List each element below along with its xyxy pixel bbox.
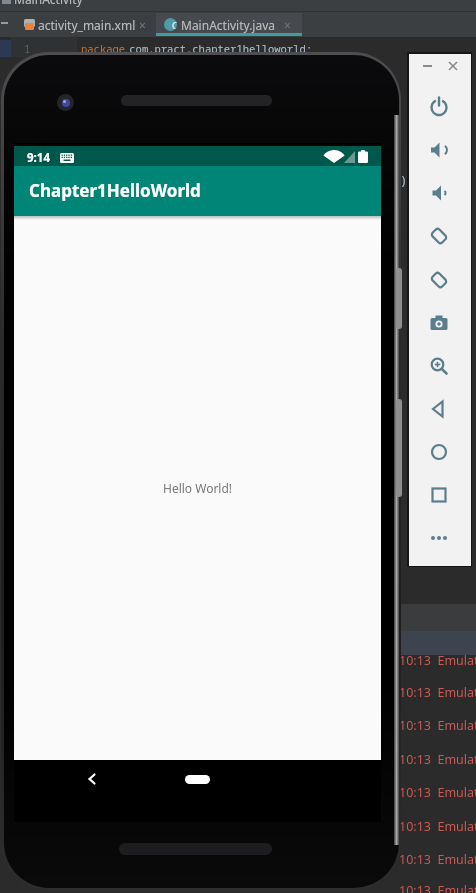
button[interactable] (448, 61, 458, 71)
staticText: Chapter1HelloWorld (29, 179, 201, 202)
button[interactable] (428, 484, 450, 506)
button[interactable] (428, 527, 450, 549)
staticText: × (284, 17, 291, 33)
staticText: 10:13 Emulator (399, 717, 476, 734)
staticText: C (172, 19, 177, 31)
button[interactable] (428, 355, 450, 377)
button[interactable] (428, 398, 450, 420)
staticText: 10:13 Emulator (399, 784, 476, 801)
staticText: 9:14 (27, 150, 50, 166)
staticText: package (81, 42, 126, 56)
staticText: 10:13 Emulator (399, 882, 476, 893)
staticText: 1 (24, 42, 31, 56)
button[interactable] (85, 772, 99, 786)
button[interactable]: activity_main.xml (19, 13, 155, 36)
staticText: Hello World! (163, 480, 233, 496)
staticText: activity_main.xml (38, 17, 136, 33)
staticText: ) (400, 172, 408, 188)
staticText: com.pract.chapter1helloworld; (123, 42, 312, 56)
button[interactable] (428, 225, 450, 247)
button[interactable] (428, 312, 450, 334)
button[interactable] (428, 441, 450, 463)
button[interactable] (185, 775, 210, 784)
button[interactable] (428, 269, 450, 291)
staticText: MainActivity (14, 0, 83, 7)
button[interactable] (428, 139, 450, 161)
staticText: × (139, 17, 146, 33)
staticText: 10:13 Emulator (399, 684, 476, 701)
staticText: 10:13 Emulator (399, 818, 476, 835)
button[interactable] (428, 96, 450, 118)
staticText: 10:13 Emulator (399, 851, 476, 868)
button[interactable] (428, 182, 450, 204)
staticText: 10:13 Emulator (399, 652, 476, 669)
staticText: 10:13 Emulator (399, 751, 476, 768)
staticText: MainActivity.java (181, 17, 276, 33)
button[interactable]: C (156, 13, 302, 36)
